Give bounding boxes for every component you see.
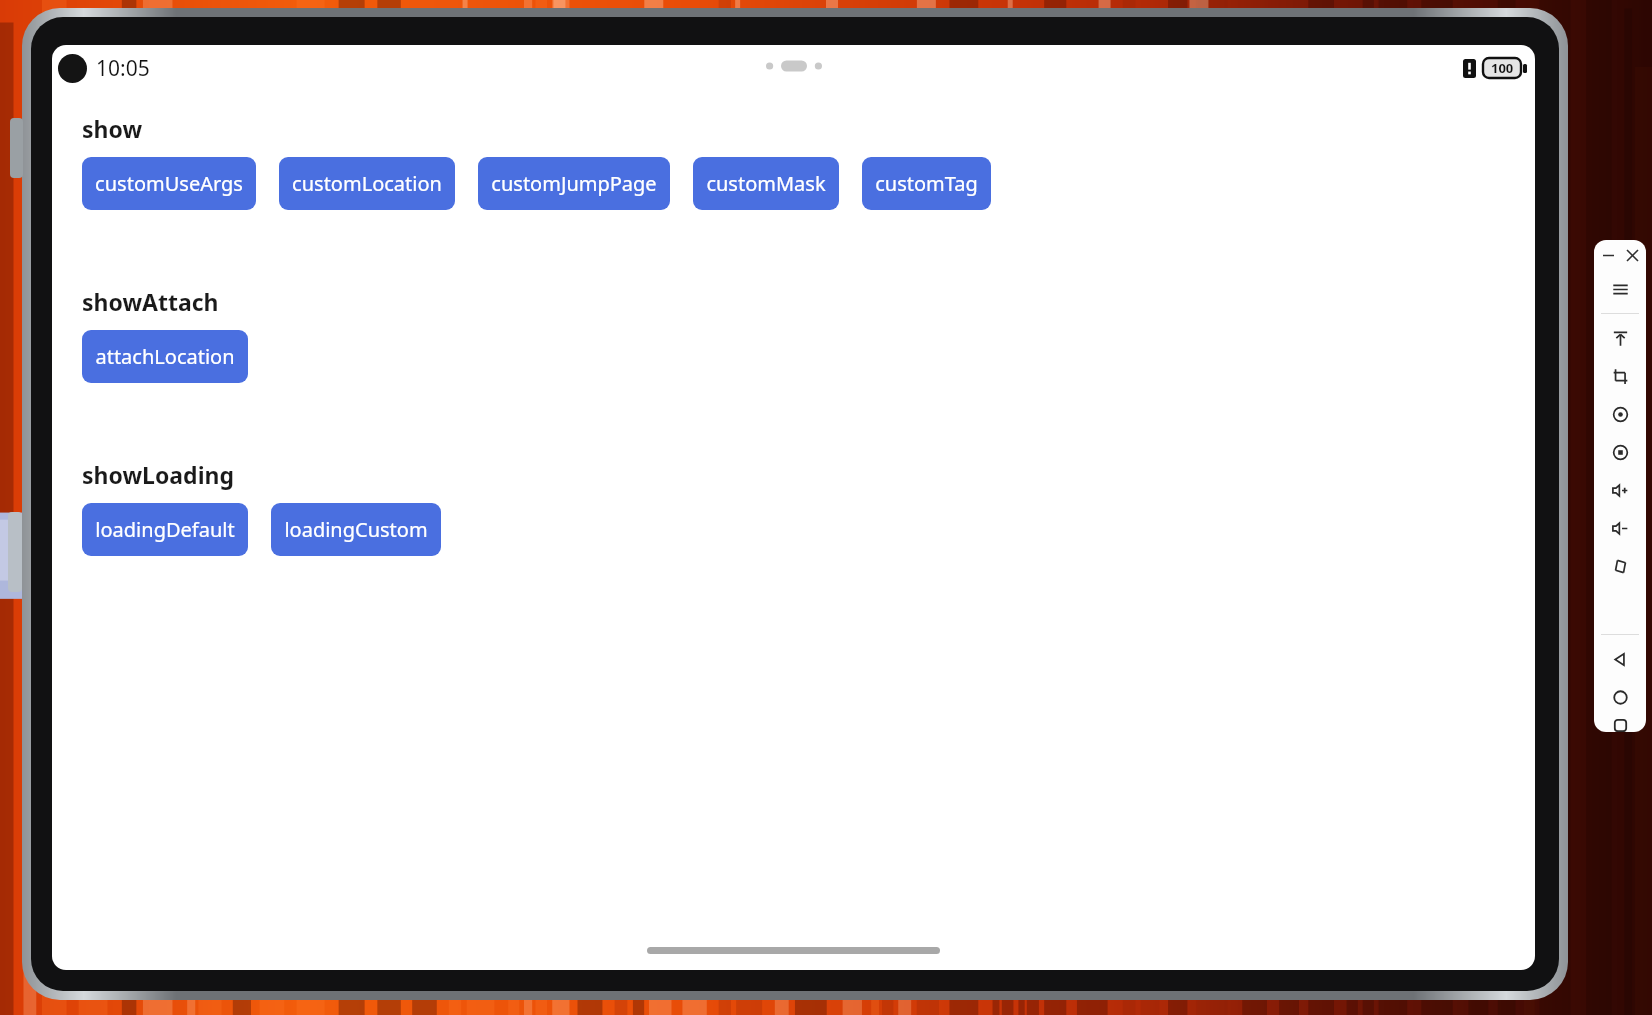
button[interactable]: Volume down [1594, 509, 1646, 547]
button[interactable]: loadingDefault [82, 503, 248, 556]
button[interactable]: Power [1594, 319, 1646, 357]
button[interactable]: customMask [693, 157, 839, 210]
button[interactable]: attachLocation [82, 330, 248, 383]
button[interactable]: customUseArgs [82, 157, 256, 210]
staticText: loadingCustom [284, 516, 428, 543]
staticText: showLoading [82, 459, 235, 490]
button[interactable]: Recent apps [1594, 716, 1646, 732]
staticText: customLocation [292, 170, 442, 197]
button[interactable]: customLocation [279, 157, 455, 210]
button[interactable]: Volume up circle [1594, 395, 1646, 433]
button[interactable]: customTag [862, 157, 991, 210]
button[interactable]: Home [1594, 678, 1646, 716]
button[interactable]: Rotate device [1594, 547, 1646, 585]
button[interactable]: loadingCustom [271, 503, 441, 556]
staticText: customUseArgs [95, 170, 243, 197]
button[interactable]: Menu [1594, 270, 1646, 308]
button[interactable]: Back [1594, 640, 1646, 678]
staticText: show [82, 113, 143, 144]
button[interactable]: Volume up [1594, 471, 1646, 509]
staticText: loadingDefault [95, 516, 235, 543]
button[interactable]: Minimize [1599, 246, 1617, 264]
staticText: 10:05 [96, 54, 150, 83]
staticText: 100 [1491, 59, 1514, 77]
staticText: customJumpPage [491, 170, 657, 197]
staticText: customTag [875, 170, 978, 197]
button[interactable]: Rotate right circle [1594, 433, 1646, 471]
button[interactable]: customJumpPage [478, 157, 670, 210]
button[interactable]: Rotate left [1594, 357, 1646, 395]
staticText: customMask [706, 170, 826, 197]
staticText: showAttach [82, 286, 219, 317]
button[interactable]: Close [1623, 246, 1641, 264]
staticText: attachLocation [95, 343, 235, 370]
